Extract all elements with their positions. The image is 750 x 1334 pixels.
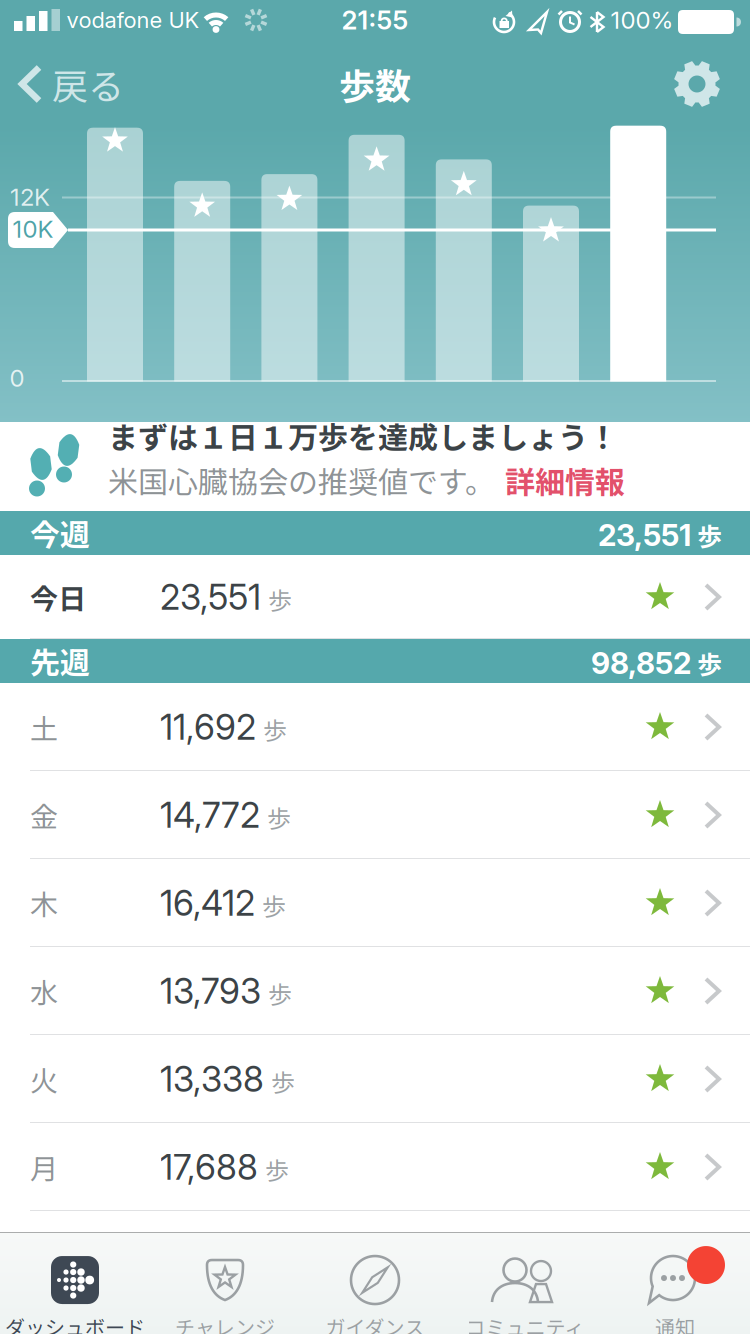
staticText: 歩	[268, 582, 292, 617]
button[interactable]: 土	[0, 683, 750, 771]
staticText: 火	[30, 1059, 58, 1099]
staticText: 98,852	[591, 645, 691, 681]
staticText: 14,772	[160, 794, 260, 836]
button[interactable]: 戻る	[18, 54, 124, 114]
staticText: 歩数	[339, 58, 411, 110]
staticText: 詳細情報	[505, 458, 625, 502]
button[interactable]: 月	[0, 1123, 750, 1211]
button[interactable]: 火	[0, 1035, 750, 1123]
button[interactable]: ガイダンス	[300, 1232, 450, 1334]
staticText: 0	[9, 363, 24, 392]
staticText: 17,688	[160, 1146, 258, 1188]
staticText: 13,338	[160, 1058, 264, 1100]
staticText: 先週	[30, 639, 90, 683]
staticText: 12K	[10, 182, 50, 211]
staticText: 歩	[691, 517, 722, 553]
staticText: 戻る	[52, 58, 124, 110]
staticText: 月	[30, 1147, 58, 1187]
staticText: 11,692	[160, 706, 256, 748]
staticText: チャレンジ	[175, 1312, 275, 1334]
button[interactable]: ダッシュボード	[0, 1232, 150, 1334]
staticText: 今週	[30, 511, 90, 555]
staticText: まずは１日１万歩を達成しましょう！	[108, 414, 618, 457]
staticText: 13,793	[160, 970, 261, 1012]
staticText: 23,551	[160, 576, 261, 618]
staticText: 10K	[12, 214, 53, 243]
staticText: 歩	[263, 712, 287, 747]
staticText: 歩	[691, 645, 722, 681]
staticText: 今日	[30, 577, 86, 617]
staticText: 歩	[262, 888, 286, 923]
staticText: 21:55	[341, 4, 408, 36]
button[interactable]: チャレンジ	[150, 1232, 300, 1334]
staticText: コミュニティ	[465, 1312, 584, 1334]
staticText: 16,412	[160, 882, 255, 924]
staticText: 歩	[265, 1152, 289, 1187]
staticText: 通知	[655, 1312, 695, 1334]
staticText: 米国心臓協会の推奨値です。	[108, 458, 495, 502]
button[interactable]: コミュニティ	[450, 1232, 600, 1334]
staticText: 歩	[267, 800, 291, 835]
staticText: 土	[30, 707, 58, 747]
button[interactable]: 水	[0, 947, 750, 1035]
staticText: 水	[30, 971, 58, 1011]
staticText: 100%	[610, 5, 673, 34]
button[interactable]: 通知	[600, 1232, 750, 1334]
staticText: 23,551	[598, 517, 691, 553]
button[interactable]: 設定	[674, 61, 720, 107]
staticText: vodafone UK	[66, 7, 199, 33]
button[interactable]: 金	[0, 771, 750, 859]
staticText: 歩	[271, 1064, 295, 1099]
staticText: ダッシュボード	[5, 1312, 145, 1334]
staticText: 木	[30, 883, 58, 923]
staticText: 歩	[268, 976, 292, 1011]
button[interactable]: 今日	[0, 555, 750, 639]
staticText: ガイダンス	[325, 1312, 424, 1334]
staticText: 金	[30, 795, 58, 835]
button[interactable]: 詳細情報	[505, 458, 625, 502]
button[interactable]: 木	[0, 859, 750, 947]
